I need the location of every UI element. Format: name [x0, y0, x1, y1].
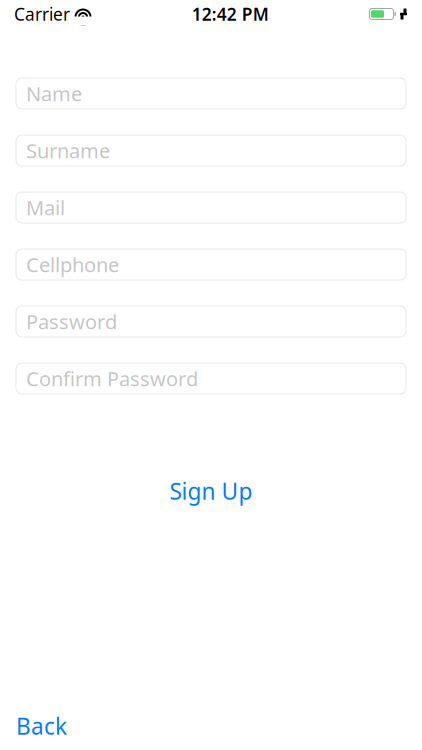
- button[interactable]: Confirm Password: [16, 363, 406, 394]
- staticText: Sign Up: [169, 476, 252, 506]
- staticText: 12:42 PM: [192, 2, 269, 25]
- button[interactable]: Surname: [16, 135, 406, 166]
- staticText: Carrier: [14, 2, 70, 25]
- staticText: Name: [26, 80, 82, 107]
- button[interactable]: Back: [16, 711, 67, 741]
- button[interactable]: Sign Up: [0, 476, 422, 506]
- button[interactable]: Mail: [16, 192, 406, 223]
- staticText: Mail: [26, 194, 65, 221]
- button[interactable]: Name: [16, 78, 406, 109]
- staticText: Password: [26, 308, 117, 335]
- button[interactable]: Cellphone: [16, 249, 406, 280]
- staticText: Confirm Password: [26, 365, 198, 392]
- button[interactable]: Password: [16, 306, 406, 337]
- staticText: Surname: [26, 137, 110, 164]
- staticText: Cellphone: [26, 251, 119, 278]
- staticText: Back: [16, 711, 67, 741]
